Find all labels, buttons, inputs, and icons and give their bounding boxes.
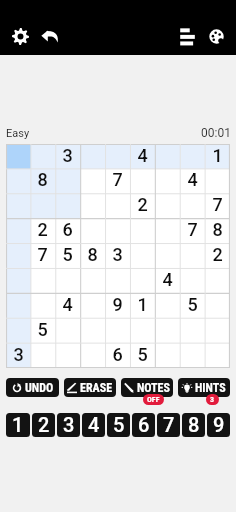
button[interactable]: 5 xyxy=(107,413,130,437)
button[interactable]: 4 xyxy=(82,413,105,437)
button[interactable] xyxy=(180,144,205,168)
button[interactable]: 6 xyxy=(105,343,130,368)
button[interactable] xyxy=(30,144,55,168)
button[interactable]: 8 xyxy=(205,218,230,243)
button[interactable] xyxy=(6,268,30,293)
button[interactable] xyxy=(6,243,30,268)
button[interactable] xyxy=(6,193,30,218)
staticText: 7 xyxy=(37,244,48,265)
button[interactable] xyxy=(130,318,155,343)
button[interactable]: 1 xyxy=(130,293,155,318)
button[interactable]: ERASE xyxy=(64,378,116,397)
button[interactable]: 1 xyxy=(205,144,230,168)
button[interactable] xyxy=(30,193,55,218)
button[interactable]: 8 xyxy=(30,168,55,193)
button[interactable] xyxy=(205,318,230,343)
button[interactable]: 7 xyxy=(105,168,130,193)
button[interactable] xyxy=(80,193,105,218)
button[interactable]: 2 xyxy=(205,243,230,268)
button[interactable]: 3 xyxy=(6,343,30,368)
button[interactable] xyxy=(180,268,205,293)
button[interactable] xyxy=(80,218,105,243)
button[interactable] xyxy=(6,218,30,243)
button[interactable] xyxy=(30,293,55,318)
button[interactable]: 2 xyxy=(130,193,155,218)
button[interactable] xyxy=(155,168,180,193)
button[interactable] xyxy=(130,243,155,268)
button[interactable] xyxy=(155,193,180,218)
button[interactable]: 1 xyxy=(6,413,30,437)
button[interactable]: 5 xyxy=(180,293,205,318)
button[interactable] xyxy=(55,343,80,368)
button[interactable]: 3 xyxy=(57,413,80,437)
button[interactable] xyxy=(80,168,105,193)
button[interactable] xyxy=(155,144,180,168)
button[interactable] xyxy=(30,268,55,293)
button[interactable]: 7 xyxy=(205,193,230,218)
button[interactable] xyxy=(80,268,105,293)
button[interactable]: Settings xyxy=(9,17,32,55)
button[interactable] xyxy=(105,218,130,243)
button[interactable] xyxy=(155,218,180,243)
button[interactable]: NOTES xyxy=(121,378,173,397)
button[interactable] xyxy=(155,318,180,343)
button[interactable] xyxy=(80,144,105,168)
button[interactable] xyxy=(55,193,80,218)
button[interactable]: 7 xyxy=(157,413,180,437)
button[interactable]: 6 xyxy=(132,413,155,437)
button[interactable]: 5 xyxy=(55,243,80,268)
button[interactable] xyxy=(105,144,130,168)
button[interactable] xyxy=(6,168,30,193)
button[interactable]: Theme xyxy=(205,17,228,55)
button[interactable] xyxy=(105,318,130,343)
button[interactable] xyxy=(80,293,105,318)
button[interactable]: 7 xyxy=(180,218,205,243)
button[interactable]: 5 xyxy=(30,318,55,343)
button[interactable] xyxy=(105,268,130,293)
button[interactable]: UNDO xyxy=(6,378,59,397)
button[interactable]: 4 xyxy=(155,268,180,293)
button[interactable]: 8 xyxy=(80,243,105,268)
button[interactable]: 6 xyxy=(55,218,80,243)
button[interactable] xyxy=(130,218,155,243)
button[interactable] xyxy=(155,343,180,368)
button[interactable] xyxy=(205,343,230,368)
button[interactable]: 2 xyxy=(32,413,55,437)
button[interactable]: 7 xyxy=(30,243,55,268)
button[interactable] xyxy=(55,268,80,293)
button[interactable]: 4 xyxy=(55,293,80,318)
button[interactable]: 5 xyxy=(130,343,155,368)
button[interactable] xyxy=(6,318,30,343)
button[interactable] xyxy=(6,293,30,318)
button[interactable]: Statistics xyxy=(175,17,198,55)
button[interactable]: Undo move xyxy=(38,17,61,55)
button[interactable]: 4 xyxy=(180,168,205,193)
button[interactable] xyxy=(180,318,205,343)
button[interactable] xyxy=(105,193,130,218)
button[interactable] xyxy=(30,343,55,368)
button[interactable]: 9 xyxy=(207,413,230,437)
button[interactable] xyxy=(130,268,155,293)
button[interactable] xyxy=(205,168,230,193)
button[interactable]: 4 xyxy=(130,144,155,168)
button[interactable] xyxy=(205,293,230,318)
button[interactable] xyxy=(130,168,155,193)
button[interactable] xyxy=(205,268,230,293)
button[interactable] xyxy=(180,343,205,368)
button[interactable] xyxy=(55,168,80,193)
button[interactable] xyxy=(155,293,180,318)
button[interactable]: HINTS xyxy=(178,378,230,397)
button[interactable]: 3 xyxy=(105,243,130,268)
button[interactable] xyxy=(155,243,180,268)
button[interactable] xyxy=(180,243,205,268)
button[interactable] xyxy=(180,193,205,218)
button[interactable] xyxy=(80,318,105,343)
button[interactable]: 2 xyxy=(30,218,55,243)
button[interactable]: 9 xyxy=(105,293,130,318)
button[interactable]: 3 xyxy=(55,144,80,168)
staticText: 9 xyxy=(112,294,123,315)
button[interactable] xyxy=(55,318,80,343)
button[interactable] xyxy=(80,343,105,368)
button[interactable] xyxy=(6,144,30,168)
button[interactable]: 8 xyxy=(182,413,205,437)
